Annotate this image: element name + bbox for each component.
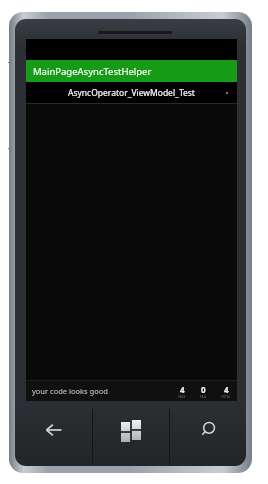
button[interactable]: AsyncOperator_ViewModel_Test — [26, 82, 237, 103]
button[interactable]: Back — [15, 406, 92, 466]
staticText: 4 — [180, 384, 185, 395]
staticText: your code looks good — [32, 386, 108, 396]
staticText: MainPageAsyncTestHelper — [33, 65, 152, 78]
button[interactable]: Start — [93, 406, 169, 466]
staticText: 4 — [224, 384, 229, 395]
staticText: TOTAL — [221, 395, 231, 399]
staticText: FAIL — [200, 395, 207, 399]
button[interactable]: Search — [170, 406, 246, 466]
staticText: 0 — [201, 384, 206, 395]
staticText: PASS — [178, 395, 186, 399]
button[interactable]: your code looks good — [26, 381, 237, 401]
staticText: AsyncOperator_ViewModel_Test — [68, 87, 195, 99]
button[interactable]: MainPageAsyncTestHelper — [26, 60, 237, 82]
